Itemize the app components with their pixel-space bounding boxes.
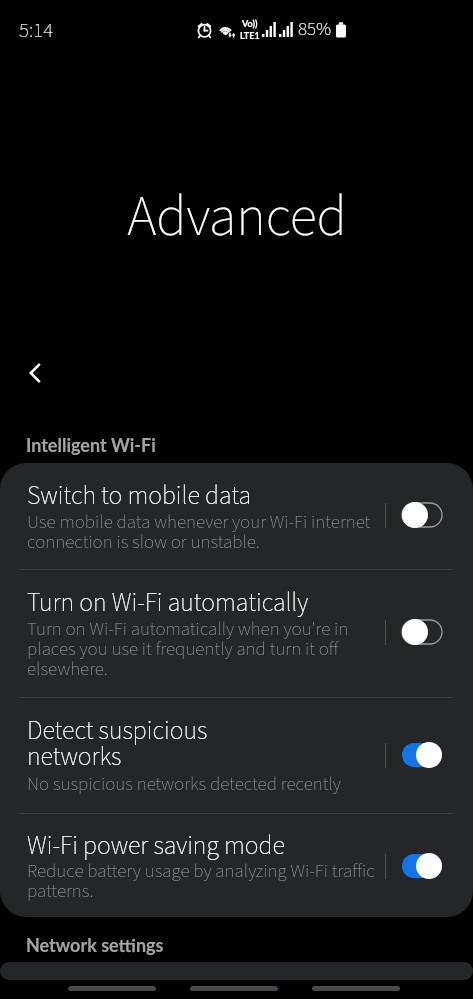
staticText: 5:14 <box>19 15 54 45</box>
button[interactable]: Switch to mobile data, off <box>398 497 446 533</box>
staticText: No suspicious networks detected recently <box>27 776 341 796</box>
staticText: Advanced <box>127 178 347 254</box>
staticText: Detect suspicious networks <box>27 720 208 772</box>
button[interactable]: Wi-Fi power saving mode, on <box>398 848 446 884</box>
button[interactable]: Home <box>190 980 278 999</box>
staticText: Switch to mobile data <box>27 485 251 511</box>
staticText: Vo)) <box>242 18 258 29</box>
staticText: Intelligent Wi-Fi <box>26 434 156 456</box>
staticText: LTE1 <box>240 30 260 41</box>
staticText: Turn on Wi-Fi automatically <box>27 592 309 618</box>
button[interactable]: Detect suspicious networks, on <box>398 737 446 773</box>
staticText: Use mobile data whenever your Wi-Fi inte… <box>27 514 385 554</box>
staticText: Reduce battery usage by analyzing Wi-Fi … <box>27 863 385 903</box>
staticText: 85% <box>298 16 332 43</box>
button[interactable]: Back <box>312 980 400 999</box>
staticText: Turn on Wi-Fi automatically when you're … <box>27 621 385 681</box>
button[interactable]: Recents <box>68 980 156 999</box>
staticText: Wi-Fi power saving mode <box>27 835 285 861</box>
staticText: Network settings <box>26 934 164 956</box>
button[interactable]: Navigate up <box>12 349 60 397</box>
button[interactable]: Turn on Wi-Fi automatically, off <box>398 614 446 650</box>
